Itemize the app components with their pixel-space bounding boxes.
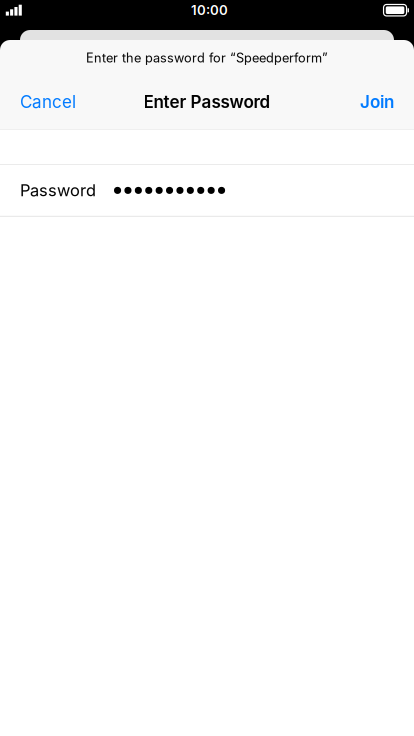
staticText: Enter the password for “Speedperform”	[86, 50, 328, 65]
button[interactable]: Password, secure text field	[0, 165, 414, 216]
button[interactable]: Cancel	[20, 80, 76, 124]
staticText: Cancel	[20, 91, 76, 112]
staticText: Password	[20, 180, 96, 200]
staticText: Enter Password	[143, 91, 270, 112]
button[interactable]: Join	[360, 80, 394, 124]
staticText: Join	[360, 91, 394, 112]
staticText: 10:00	[191, 2, 228, 18]
